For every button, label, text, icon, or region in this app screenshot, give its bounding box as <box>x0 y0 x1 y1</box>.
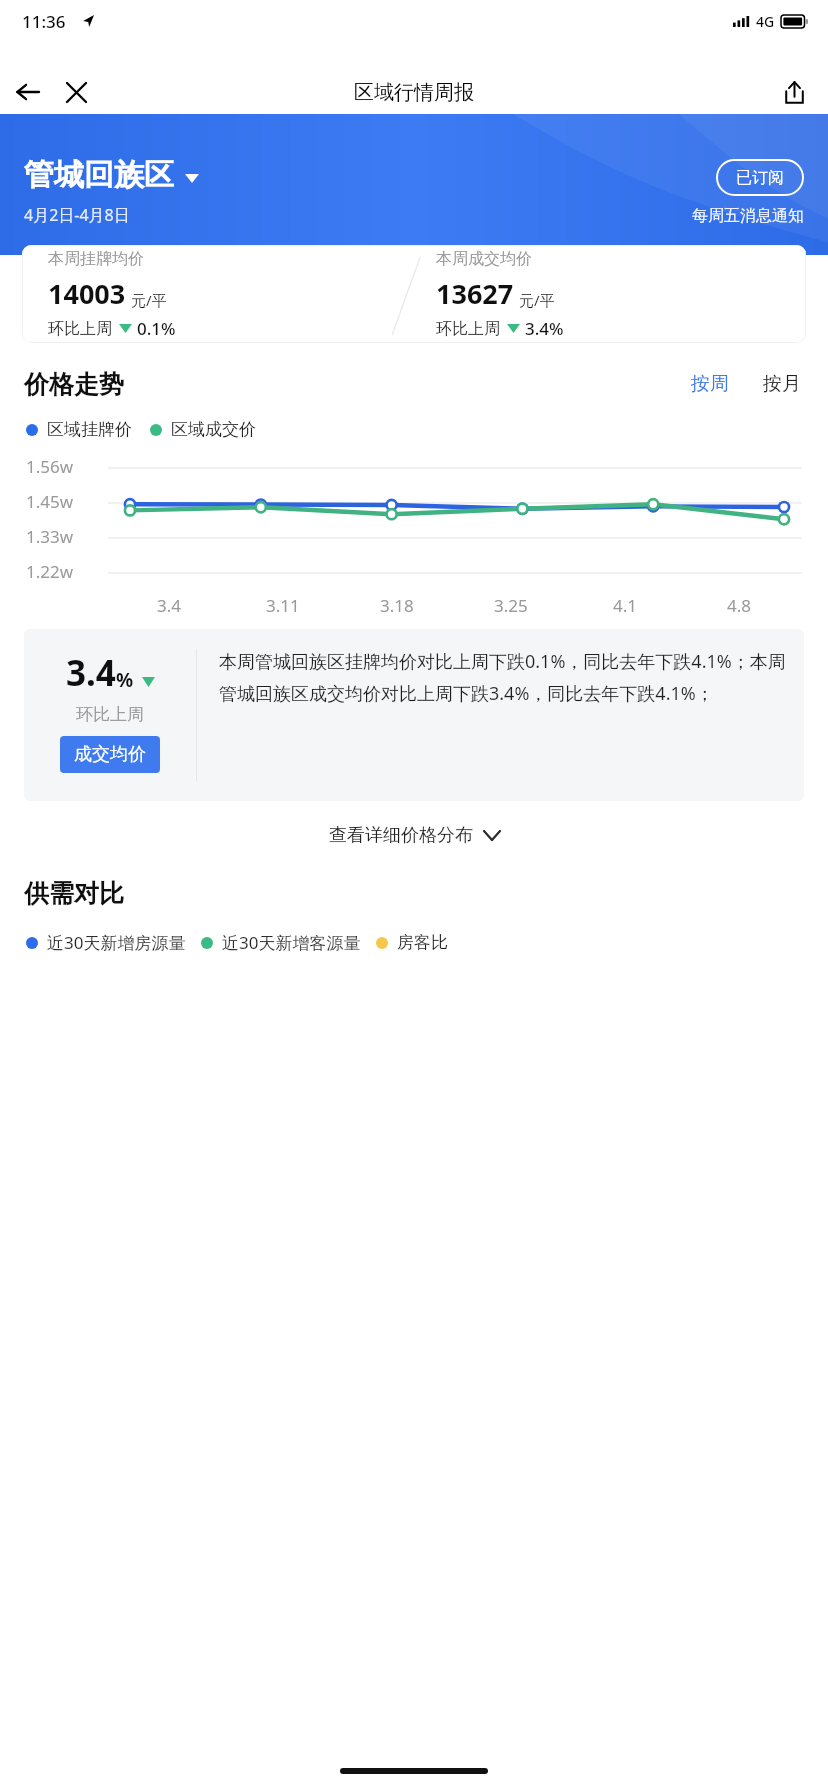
button[interactable]: Share <box>772 70 816 114</box>
staticText: 查看详细价格分布 <box>329 824 473 847</box>
staticText: 按月 <box>763 372 801 396</box>
staticText: 供需对比 <box>24 878 124 909</box>
staticText: 3.11 <box>266 594 300 617</box>
staticText: 按周 <box>691 372 729 396</box>
staticText: 元/平 <box>519 290 555 310</box>
staticText: 4.1 <box>613 594 638 617</box>
button[interactable]: 管城回族区 <box>24 156 199 194</box>
staticText: 4.8 <box>727 594 752 617</box>
staticText: 区域行情周报 <box>354 80 474 105</box>
staticText: 区域挂牌价 <box>47 419 132 440</box>
button[interactable]: 按周 <box>686 367 734 401</box>
staticText: 本周成交均价 <box>436 249 532 269</box>
staticText: 3.4% <box>525 317 564 340</box>
staticText: 3.25 <box>494 594 528 617</box>
staticText: 0.1% <box>137 317 176 340</box>
button[interactable]: 成交均价 <box>60 736 160 773</box>
staticText: 区域成交价 <box>171 419 256 440</box>
button[interactable]: 查看详细价格分布 <box>0 815 828 856</box>
staticText: % <box>116 667 134 693</box>
staticText: 3.4 <box>66 649 116 697</box>
staticText: 近30天新增房源量 <box>47 931 186 954</box>
button[interactable]: 按月 <box>758 367 806 401</box>
staticText: 11:36 <box>22 10 66 33</box>
button[interactable]: 已订阅 <box>716 159 804 196</box>
button[interactable]: Back <box>6 70 50 114</box>
staticText: 元/平 <box>131 290 167 310</box>
staticText: 每周五消息通知 <box>692 206 804 226</box>
staticText: 价格走势 <box>24 369 124 400</box>
staticText: 环比上周 <box>76 704 144 725</box>
staticText: 管城回族区 <box>24 156 174 194</box>
staticText: 1.45w <box>26 490 74 513</box>
staticText: 房客比 <box>397 932 448 953</box>
staticText: 近30天新增客源量 <box>222 931 361 954</box>
staticText: 本周管城回族区挂牌均价对比上周下跌0.1%，同比去年下跌4.1%；本周管城回族区… <box>219 649 790 705</box>
staticText: 3.4 <box>157 594 182 617</box>
staticText: 1.56w <box>26 455 74 478</box>
staticText: 3.18 <box>380 594 414 617</box>
staticText: 14003 <box>48 275 126 312</box>
staticText: 1.33w <box>26 525 74 548</box>
staticText: 13627 <box>436 275 514 312</box>
staticText: 已订阅 <box>736 168 784 188</box>
staticText: 1.22w <box>26 560 74 583</box>
staticText: 4月2日-4月8日 <box>24 204 130 226</box>
staticText: 环比上周 <box>436 319 500 339</box>
button[interactable]: Close <box>54 70 98 114</box>
staticText: 成交均价 <box>74 743 146 766</box>
staticText: 环比上周 <box>48 319 112 339</box>
staticText: 本周挂牌均价 <box>48 249 144 269</box>
staticText: 4G <box>756 12 775 31</box>
